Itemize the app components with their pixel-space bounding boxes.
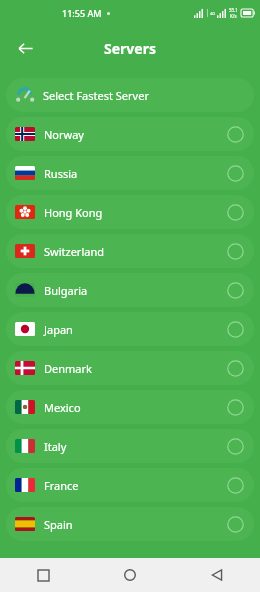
- staticText: Switzerland: [44, 244, 104, 259]
- button[interactable]: Select Fastest Server: [6, 78, 254, 112]
- staticText: Italy: [44, 439, 67, 454]
- button[interactable]: Home: [115, 560, 145, 590]
- button[interactable]: Bulgaria: [6, 273, 254, 307]
- button[interactable]: Hong Kong: [6, 195, 254, 229]
- button[interactable]: Switzerland: [6, 234, 254, 268]
- button[interactable]: Back: [11, 34, 39, 62]
- staticText: Japan: [44, 322, 73, 337]
- button[interactable]: Back: [202, 560, 232, 590]
- staticText: Norway: [44, 127, 84, 142]
- staticText: Spain: [44, 517, 73, 532]
- staticText: 55.1: [229, 7, 238, 13]
- staticText: Select Fastest Server: [43, 88, 149, 103]
- staticText: 4G: [210, 11, 216, 16]
- button[interactable]: Mexico: [6, 390, 254, 424]
- button[interactable]: Recent apps: [28, 560, 58, 590]
- staticText: Denmark: [44, 361, 92, 376]
- button[interactable]: Denmark: [6, 351, 254, 385]
- button[interactable]: France: [6, 468, 254, 502]
- staticText: Russia: [44, 166, 78, 181]
- staticText: France: [44, 478, 79, 493]
- button[interactable]: Japan: [6, 312, 254, 346]
- staticText: K/s: [230, 13, 237, 19]
- button[interactable]: Italy: [6, 429, 254, 463]
- staticText: Mexico: [44, 400, 81, 415]
- button[interactable]: Norway: [6, 117, 254, 151]
- staticText: 11:55 AM: [62, 7, 102, 19]
- staticText: Servers: [104, 39, 156, 58]
- button[interactable]: Spain: [6, 507, 254, 541]
- staticText: Hong Kong: [44, 205, 103, 220]
- staticText: Bulgaria: [44, 283, 88, 298]
- button[interactable]: Russia: [6, 156, 254, 190]
